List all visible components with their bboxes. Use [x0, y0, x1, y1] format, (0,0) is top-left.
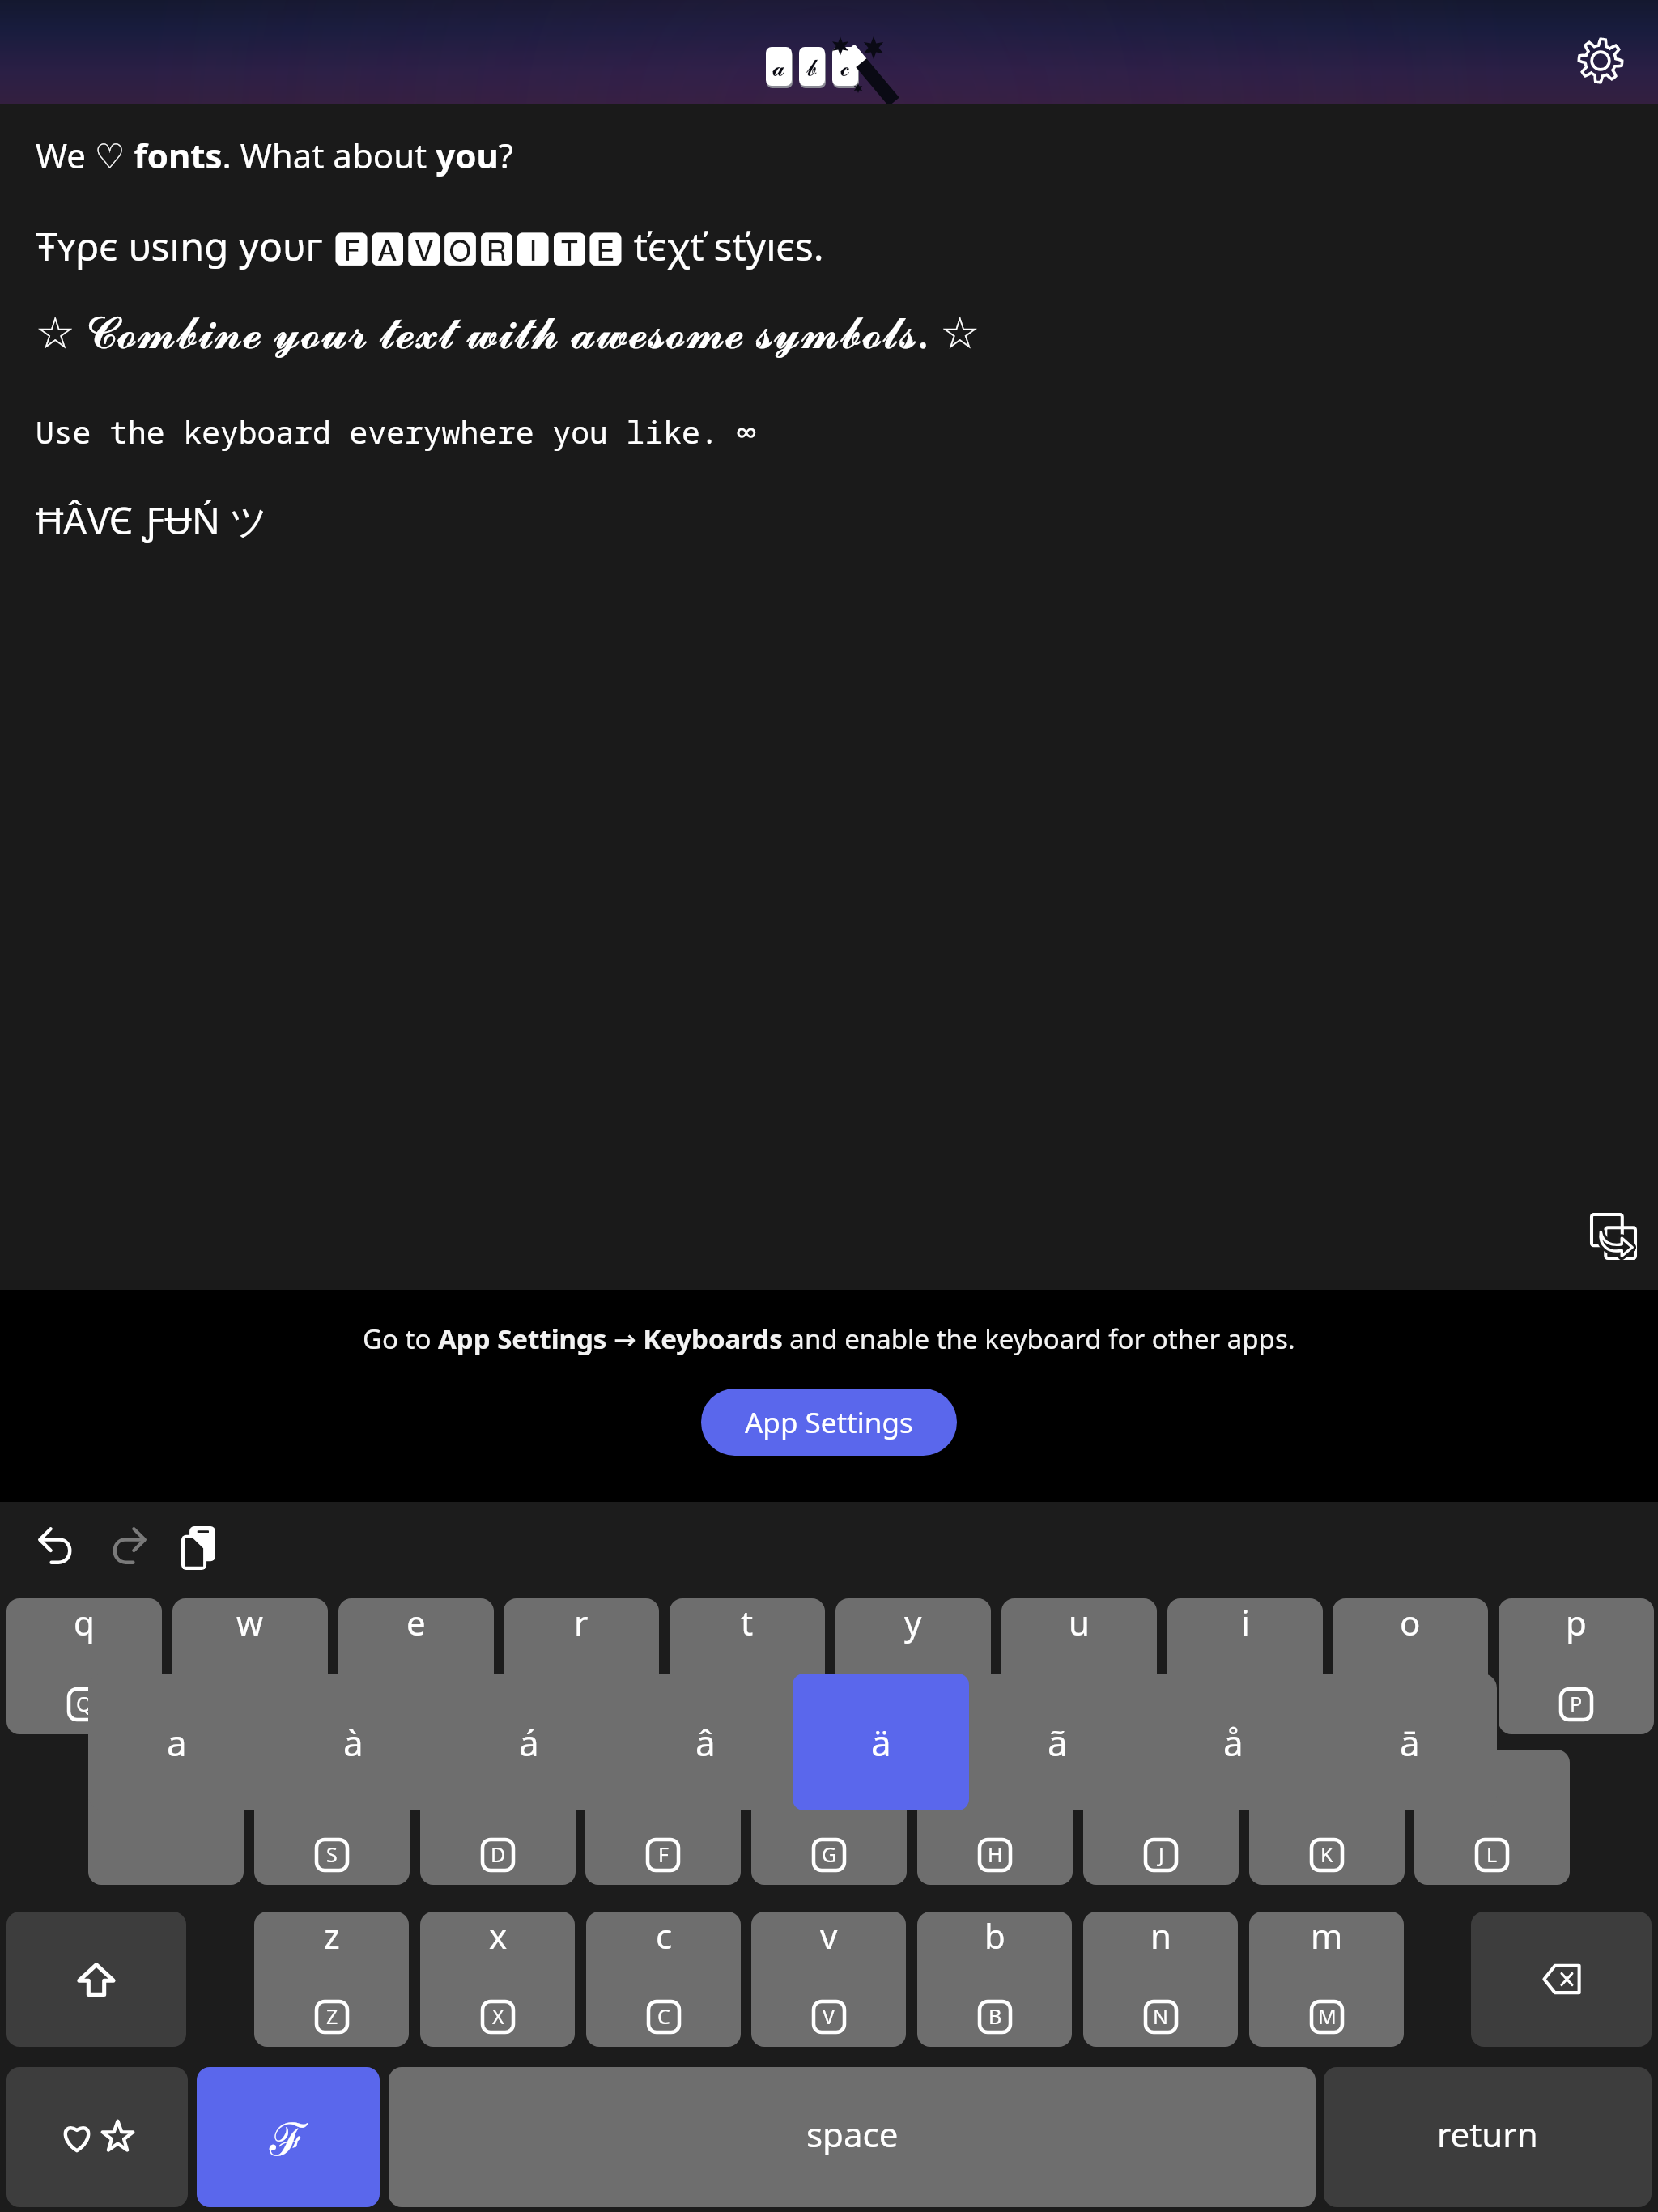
button[interactable]: q — [6, 1598, 162, 1734]
staticText: N — [1153, 2002, 1169, 2030]
staticText: ĦÂѴЄ ƑɄŃ ツ — [36, 495, 268, 546]
staticText: o — [1400, 1599, 1421, 1644]
button[interactable]: j — [1083, 1750, 1239, 1885]
button[interactable]: w — [172, 1598, 328, 1734]
button[interactable]: p — [1499, 1598, 1654, 1734]
staticText: Use the keyboard everywhere you like. ∞ — [36, 410, 756, 453]
staticText: App Settings — [745, 1403, 913, 1442]
button[interactable]: à — [265, 1674, 441, 1810]
staticText: J — [1158, 1840, 1164, 1868]
button[interactable]: s — [254, 1750, 410, 1885]
staticText: i — [1241, 1599, 1250, 1644]
staticText: q — [74, 1599, 95, 1644]
staticText: 𝓪 — [772, 58, 785, 80]
staticText: Go to App Settings → Keyboards and enabl… — [363, 1321, 1295, 1357]
staticText: ã — [1048, 1718, 1068, 1767]
button[interactable]: ā — [1321, 1674, 1497, 1810]
staticText: t — [741, 1599, 754, 1644]
button[interactable]: m — [1249, 1912, 1404, 2047]
button[interactable]: Redo — [96, 1513, 160, 1578]
button[interactable]: z — [254, 1912, 409, 2047]
staticText: n — [1150, 1912, 1171, 1958]
staticText: v — [820, 1912, 838, 1958]
button[interactable]: h — [917, 1750, 1073, 1885]
staticText: We ♡ fonts. What about you? — [36, 132, 513, 178]
staticText: L — [1486, 1840, 1498, 1868]
button[interactable]: b — [917, 1912, 1072, 2047]
button[interactable]: k — [1249, 1750, 1405, 1885]
staticText: â — [695, 1718, 716, 1767]
button[interactable]: App Settings — [701, 1389, 957, 1456]
button[interactable]: return — [1324, 2067, 1652, 2207]
staticText: D — [491, 1840, 506, 1868]
button[interactable]: a — [88, 1750, 244, 1885]
staticText: B — [988, 2002, 1002, 2030]
staticText: ℱ — [270, 2107, 308, 2168]
staticText: K — [1320, 1840, 1333, 1868]
button[interactable]: g — [751, 1750, 907, 1885]
staticText: M — [1318, 2002, 1337, 2030]
staticText: á — [519, 1718, 539, 1767]
button[interactable]: x — [420, 1912, 575, 2047]
staticText: S — [326, 1840, 338, 1868]
button[interactable]: Undo — [24, 1513, 89, 1578]
staticText: return — [1437, 2111, 1538, 2157]
button[interactable]: ä — [793, 1674, 969, 1810]
button[interactable]: t — [670, 1598, 825, 1734]
button[interactable]: n — [1083, 1912, 1238, 2047]
button[interactable]: Symbols and emoji — [6, 2067, 188, 2207]
staticText: e — [406, 1599, 426, 1644]
button[interactable]: Copy — [166, 1516, 231, 1580]
staticText: a — [167, 1718, 187, 1767]
staticText: space — [806, 2111, 899, 2157]
staticText: H — [988, 1840, 1003, 1868]
button[interactable]: á — [440, 1674, 617, 1810]
button[interactable]: r — [504, 1598, 659, 1734]
button[interactable]: i — [1167, 1598, 1323, 1734]
staticText: C — [657, 2002, 670, 2030]
button[interactable]: l — [1414, 1750, 1570, 1885]
button[interactable]: e — [338, 1598, 494, 1734]
staticText: x — [489, 1912, 508, 1958]
staticText: ☆ 𝓒𝓸𝓶𝓫𝓲𝓷𝓮 𝔂𝓸𝓾𝓻 𝓽𝓮𝔁𝓽 𝔀𝓲𝓽𝓱 𝓪𝔀𝓮𝓼𝓸𝓶𝓮 𝓼𝔂𝓶𝓫𝓸𝓵𝓼… — [36, 301, 980, 361]
button[interactable]: v — [751, 1912, 906, 2047]
staticText: m — [1311, 1912, 1343, 1958]
button[interactable]: Font styles — [197, 2067, 380, 2207]
staticText: 𝓫 — [806, 58, 818, 80]
button[interactable]: a — [88, 1674, 265, 1810]
button[interactable]: å — [1145, 1674, 1321, 1810]
button[interactable]: Shift — [6, 1912, 186, 2047]
button[interactable]: â — [617, 1674, 793, 1810]
button[interactable]: d — [420, 1750, 576, 1885]
staticText: 𝓬 — [840, 58, 850, 80]
button[interactable]: Backspace — [1471, 1912, 1652, 2047]
button[interactable]: ã — [969, 1674, 1146, 1810]
staticText: à — [343, 1718, 363, 1767]
button[interactable]: Insert text — [1575, 1198, 1652, 1274]
button[interactable]: u — [1001, 1598, 1157, 1734]
button[interactable]: y — [835, 1598, 991, 1734]
button[interactable]: space — [389, 2067, 1316, 2207]
button[interactable]: f — [585, 1750, 741, 1885]
button[interactable]: c — [586, 1912, 741, 2047]
staticText: Z — [326, 2002, 338, 2030]
staticText: b — [984, 1912, 1005, 1958]
staticText: w — [236, 1599, 264, 1644]
staticText: u — [1069, 1599, 1090, 1644]
button[interactable]: o — [1333, 1598, 1488, 1734]
staticText: Ŧʏρє υѕıոց уօυг 🅵🅰🆅🅾🆁🅸🆃🅴 ťєχť ѕťуıєѕ. — [36, 219, 824, 272]
staticText: F — [658, 1840, 669, 1868]
button[interactable]: Settings — [1566, 26, 1635, 96]
staticText: X — [492, 2002, 504, 2030]
